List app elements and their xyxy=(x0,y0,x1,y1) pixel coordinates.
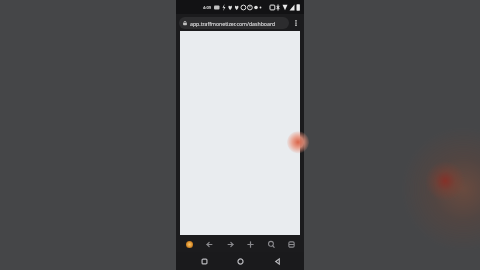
button[interactable]: Home xyxy=(231,252,249,270)
button[interactable]: Back xyxy=(201,236,217,252)
staticText: 4:09 xyxy=(203,5,211,10)
button[interactable]: Back xyxy=(268,252,286,270)
staticText: app.traffmonetizer.com/dashboard xyxy=(190,20,276,27)
button[interactable]: Recent apps xyxy=(195,252,213,270)
button[interactable]: app.traffmonetizer.com/dashboard xyxy=(179,17,289,29)
button[interactable]: Search xyxy=(263,236,279,252)
button[interactable]: New tab xyxy=(242,236,258,252)
button[interactable]: Forward xyxy=(222,236,238,252)
button[interactable]: More options xyxy=(289,16,303,30)
button[interactable]: Tabs xyxy=(283,236,299,252)
button[interactable]: Account xyxy=(181,236,197,252)
